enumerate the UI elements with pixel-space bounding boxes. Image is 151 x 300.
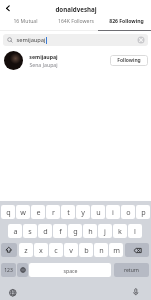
button[interactable]: r (46, 205, 60, 219)
button[interactable]: Backspace (125, 243, 149, 257)
staticText: b (84, 245, 89, 255)
staticText: n (99, 245, 104, 255)
button[interactable]: c (49, 243, 63, 257)
button[interactable]: g (68, 224, 82, 238)
staticText: d (43, 226, 48, 236)
staticText: x (39, 245, 43, 255)
staticText: e (36, 207, 41, 217)
staticText: p (141, 207, 146, 217)
staticText: v (69, 245, 73, 255)
staticText: z (24, 245, 28, 255)
button[interactable]: Following (110, 55, 148, 66)
button[interactable]: l (128, 224, 142, 238)
staticText: s (28, 226, 32, 236)
button[interactable]: x (34, 243, 48, 257)
staticText: m (113, 245, 120, 255)
button[interactable]: Dictate (132, 288, 140, 296)
staticText: semijaupaj (16, 36, 46, 44)
staticText: a (13, 226, 18, 236)
button[interactable]: semijaupaj (0, 51, 151, 70)
button[interactable]: i (106, 205, 120, 219)
staticText: 826 Following (109, 18, 144, 25)
button[interactable]: j (98, 224, 112, 238)
staticText: 164K Followers (58, 18, 94, 25)
button[interactable]: h (83, 224, 97, 238)
button[interactable]: space (29, 263, 111, 277)
staticText: donaldveshaj (55, 5, 97, 13)
button[interactable]: Switch keyboard language (9, 289, 17, 297)
button[interactable]: s (23, 224, 37, 238)
button[interactable]: Back (2, 2, 14, 14)
button[interactable]: o (121, 205, 135, 219)
staticText: k (118, 226, 122, 236)
staticText: space (63, 267, 78, 274)
button[interactable]: t (61, 205, 75, 219)
button[interactable]: q (1, 205, 15, 219)
staticText: q (6, 207, 11, 217)
staticText: r (52, 207, 55, 217)
button[interactable]: Numbers (1, 263, 16, 277)
staticText: u (96, 207, 101, 217)
staticText: Sena Jaupaj (29, 61, 58, 68)
button[interactable]: m (109, 243, 123, 257)
staticText: h (88, 226, 93, 236)
staticText: t (67, 207, 70, 217)
staticText: o (126, 207, 131, 217)
button[interactable]: u (91, 205, 105, 219)
staticText: c (54, 245, 58, 255)
button[interactable]: return (114, 263, 149, 277)
staticText: f (59, 226, 62, 236)
staticText: w (20, 207, 26, 217)
button[interactable]: e (31, 205, 45, 219)
staticText: j (104, 226, 106, 236)
button[interactable]: 164K Followers (51, 16, 101, 26)
button[interactable]: y (76, 205, 90, 219)
button[interactable]: 16 Mutual (0, 16, 51, 26)
button[interactable]: semijaupaj (3, 34, 148, 46)
button[interactable]: 826 Following (101, 16, 151, 26)
button[interactable]: Shift (1, 243, 17, 257)
button[interactable]: Clear text (137, 36, 145, 44)
button[interactable]: k (113, 224, 127, 238)
staticText: return (124, 267, 139, 274)
button[interactable]: v (64, 243, 78, 257)
button[interactable]: Emoji (17, 263, 28, 277)
staticText: semijaupaj (29, 53, 58, 60)
staticText: y (81, 207, 85, 217)
staticText: i (112, 207, 114, 217)
button[interactable]: w (16, 205, 30, 219)
staticText: l (134, 226, 136, 236)
staticText: g (73, 226, 78, 236)
button[interactable]: z (19, 243, 33, 257)
button[interactable]: p (136, 205, 150, 219)
staticText: 123 (4, 267, 13, 274)
staticText: Following (117, 57, 141, 64)
button[interactable]: b (79, 243, 93, 257)
button[interactable]: f (53, 224, 67, 238)
button[interactable]: d (38, 224, 52, 238)
button[interactable]: a (8, 224, 22, 238)
staticText: 16 Mutual (13, 18, 38, 25)
button[interactable]: n (94, 243, 108, 257)
